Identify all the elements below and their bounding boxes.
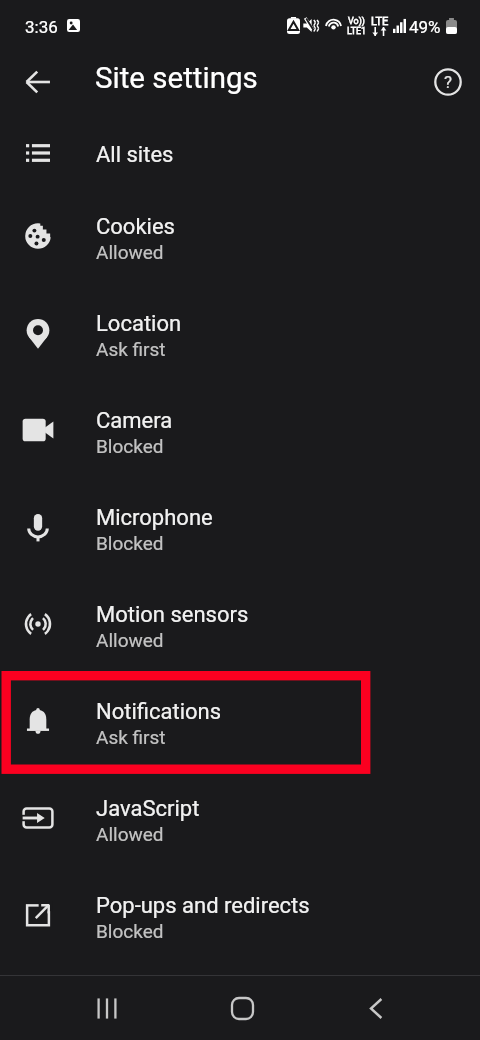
staticText: Vo)) bbox=[348, 16, 365, 27]
staticText: Motion sensors bbox=[96, 602, 249, 628]
button[interactable]: Back bbox=[0, 44, 75, 119]
button[interactable]: Help bbox=[416, 44, 480, 119]
staticText: LTE1 bbox=[347, 26, 367, 37]
staticText: Ask first bbox=[96, 726, 166, 748]
staticText: Blocked bbox=[96, 532, 164, 554]
staticText: Pop-ups and redirects bbox=[96, 893, 310, 919]
staticText: Allowed bbox=[96, 629, 164, 651]
staticText: 49% bbox=[409, 17, 441, 37]
staticText: Allowed bbox=[96, 823, 164, 845]
staticText: Blocked bbox=[96, 920, 164, 942]
staticText: Camera bbox=[96, 408, 173, 434]
button[interactable]: Back bbox=[343, 976, 409, 1040]
button[interactable]: JavaScript bbox=[0, 771, 480, 868]
staticText: 3:36 bbox=[25, 17, 58, 37]
button[interactable]: Cookies bbox=[0, 189, 480, 286]
button[interactable]: All sites bbox=[0, 118, 480, 192]
staticText: Microphone bbox=[96, 505, 213, 531]
staticText: Allowed bbox=[96, 241, 164, 263]
staticText: Location bbox=[96, 311, 182, 337]
button[interactable]: Pop-ups and redirects bbox=[0, 868, 480, 965]
staticText: Blocked bbox=[96, 435, 164, 457]
button[interactable]: Camera bbox=[0, 383, 480, 480]
button[interactable]: Recent apps bbox=[74, 976, 140, 1040]
button[interactable]: Notifications bbox=[0, 674, 480, 771]
staticText: Site settings bbox=[95, 61, 258, 96]
staticText: JavaScript bbox=[96, 796, 200, 822]
staticText: LTE bbox=[371, 15, 389, 28]
staticText: All sites bbox=[96, 142, 174, 168]
button[interactable]: Motion sensors bbox=[0, 577, 480, 674]
button[interactable]: Microphone bbox=[0, 480, 480, 577]
staticText: ? bbox=[444, 72, 453, 92]
staticText: Ask first bbox=[96, 338, 166, 360]
staticText: Cookies bbox=[96, 214, 175, 240]
button[interactable]: Home bbox=[209, 976, 275, 1040]
staticText: Notifications bbox=[96, 699, 222, 725]
button[interactable]: Location bbox=[0, 286, 480, 383]
